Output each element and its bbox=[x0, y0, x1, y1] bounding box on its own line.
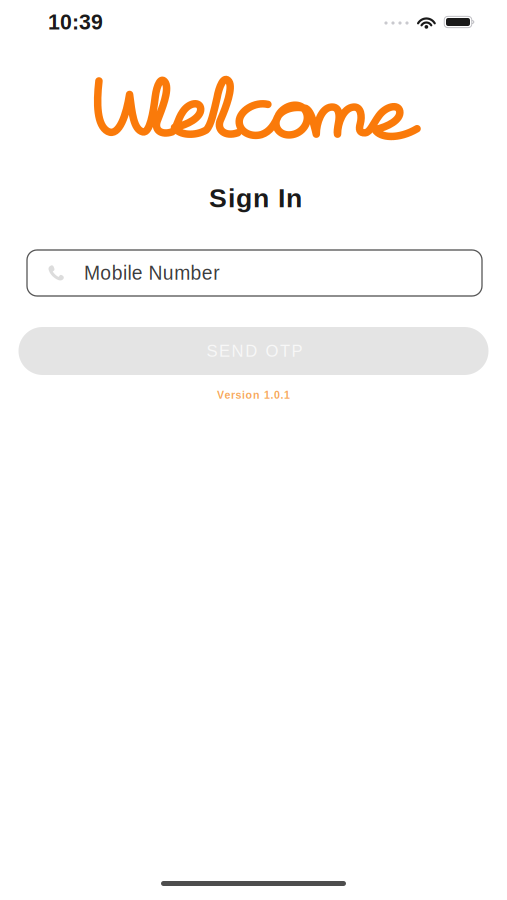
staticText: SEND OTP bbox=[206, 342, 303, 360]
staticText: 10:39 bbox=[48, 10, 103, 34]
button[interactable]: SEND OTP bbox=[18, 327, 488, 375]
staticText: Sign In bbox=[209, 183, 302, 213]
staticText: Version 1.0.1 bbox=[217, 389, 290, 401]
button[interactable]: Mobile Number bbox=[27, 250, 482, 296]
staticText: Mobile Number bbox=[84, 262, 219, 284]
